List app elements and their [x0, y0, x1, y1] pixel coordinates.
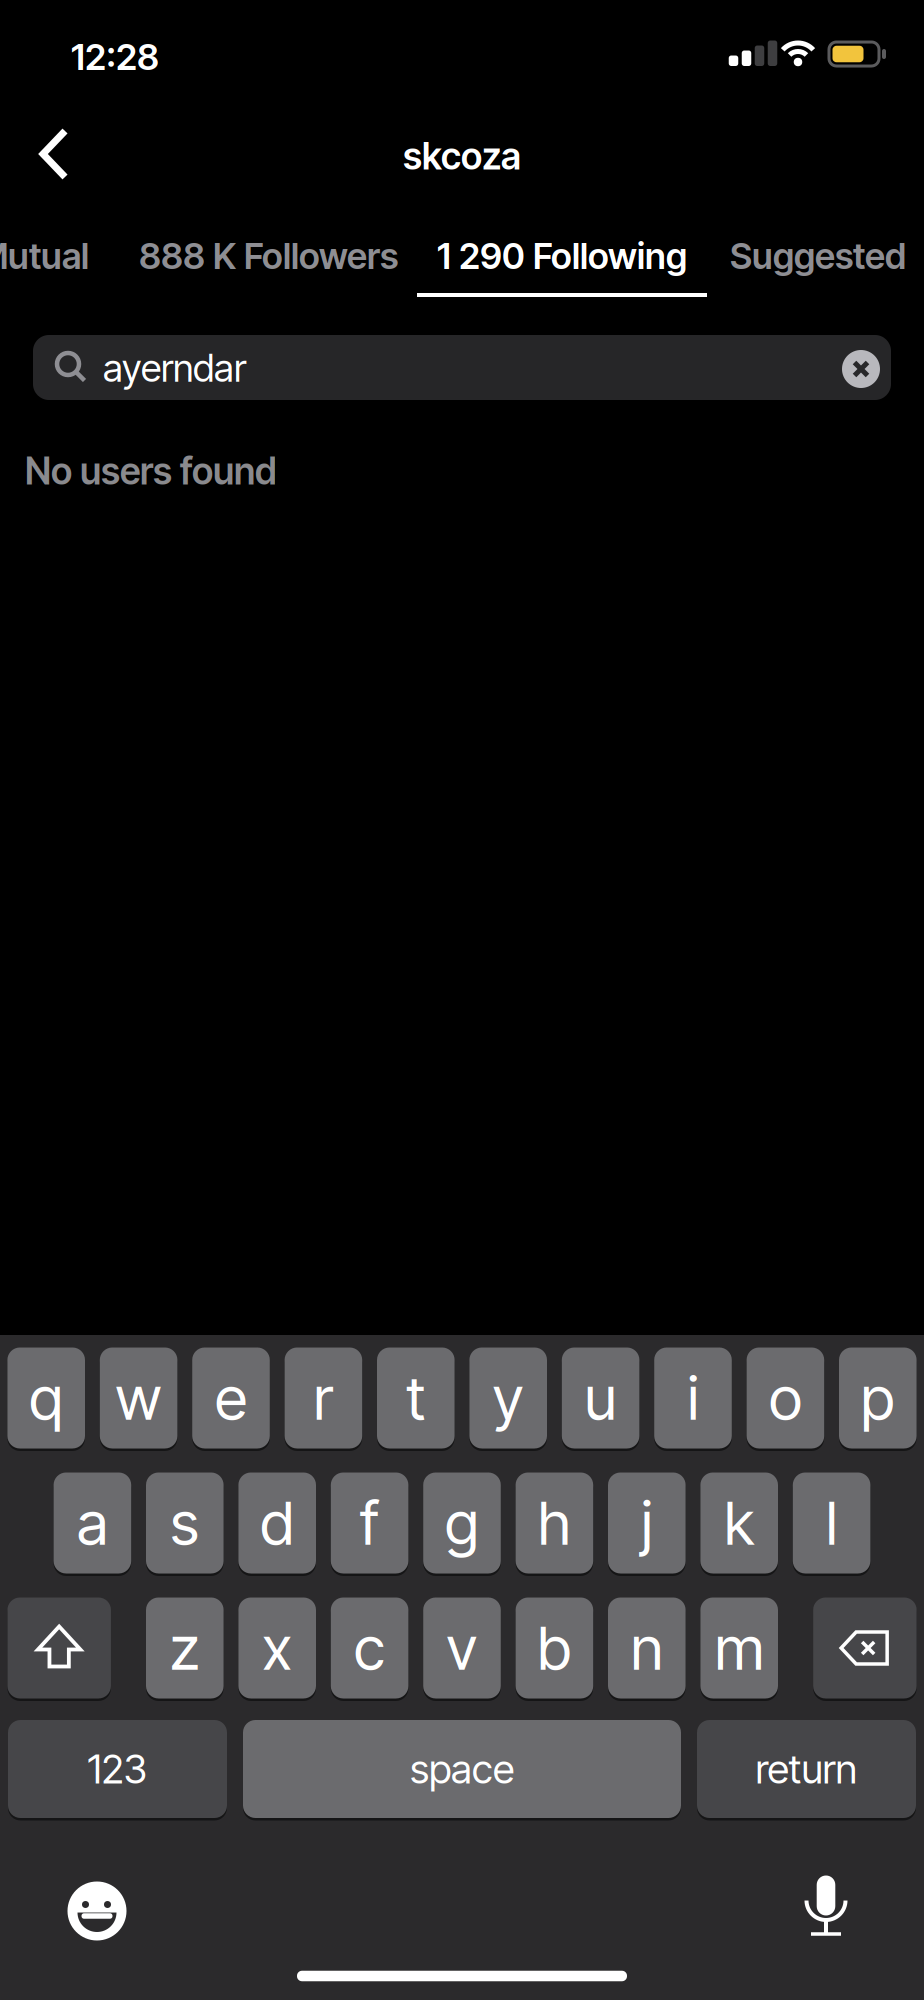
- staticText: c: [354, 1612, 385, 1684]
- staticText: k: [724, 1487, 754, 1559]
- button[interactable]: n: [608, 1597, 686, 1698]
- button[interactable]: Clear search text: [842, 350, 880, 388]
- staticText: z: [170, 1612, 200, 1684]
- staticText: d: [260, 1487, 294, 1559]
- staticText: i: [687, 1362, 698, 1434]
- button[interactable]: 888 K Followers: [119, 219, 418, 297]
- button[interactable]: Shift: [7, 1597, 111, 1698]
- button[interactable]: Back: [0, 121, 88, 187]
- staticText: ayerndar: [103, 345, 246, 391]
- button[interactable]: a: [54, 1472, 131, 1573]
- button[interactable]: h: [516, 1472, 593, 1573]
- button[interactable]: p: [839, 1347, 917, 1448]
- button[interactable]: e: [192, 1347, 270, 1448]
- button[interactable]: Emoji: [66, 1880, 128, 1942]
- button[interactable]: o: [747, 1347, 824, 1448]
- staticText: o: [769, 1362, 802, 1434]
- button[interactable]: q: [7, 1347, 85, 1448]
- button[interactable]: 1 290 Following: [417, 219, 707, 297]
- staticText: l: [826, 1487, 837, 1559]
- staticText: Suggested: [730, 234, 906, 278]
- staticText: 123: [87, 1745, 147, 1793]
- button[interactable]: f: [331, 1472, 408, 1573]
- staticText: s: [170, 1487, 199, 1559]
- staticText: x: [262, 1612, 292, 1684]
- staticText: p: [861, 1362, 895, 1434]
- staticText: j: [641, 1487, 652, 1559]
- button[interactable]: Delete: [813, 1597, 917, 1698]
- staticText: b: [537, 1612, 571, 1684]
- staticText: skcoza: [403, 134, 521, 178]
- staticText: v: [446, 1612, 477, 1684]
- staticText: space: [410, 1745, 514, 1793]
- button[interactable]: d: [238, 1472, 316, 1573]
- staticText: Mutual: [0, 234, 89, 278]
- staticText: w: [116, 1362, 162, 1434]
- button[interactable]: Suggested: [707, 219, 924, 297]
- staticText: r: [313, 1362, 333, 1434]
- button[interactable]: w: [100, 1347, 177, 1448]
- button[interactable]: i: [654, 1347, 732, 1448]
- button[interactable]: v: [423, 1597, 501, 1698]
- button[interactable]: Dictate: [793, 1873, 859, 1939]
- button[interactable]: m: [700, 1597, 778, 1698]
- staticText: t: [406, 1362, 425, 1434]
- staticText: 888 K Followers: [139, 234, 398, 278]
- button[interactable]: k: [700, 1472, 778, 1573]
- button[interactable]: u: [562, 1347, 639, 1448]
- button[interactable]: Search: [33, 335, 891, 400]
- button[interactable]: return: [697, 1720, 916, 1818]
- staticText: f: [360, 1487, 379, 1559]
- staticText: g: [445, 1487, 479, 1559]
- staticText: u: [585, 1362, 617, 1434]
- staticText: n: [631, 1612, 663, 1684]
- button[interactable]: r: [285, 1347, 362, 1448]
- button[interactable]: 123: [8, 1720, 227, 1818]
- staticText: return: [755, 1745, 857, 1793]
- staticText: h: [538, 1487, 571, 1559]
- button[interactable]: l: [793, 1472, 870, 1573]
- button[interactable]: y: [469, 1347, 547, 1448]
- staticText: 1 290 Following: [437, 234, 687, 278]
- button[interactable]: space: [243, 1720, 681, 1818]
- button[interactable]: g: [423, 1472, 501, 1573]
- button[interactable]: t: [377, 1347, 455, 1448]
- button[interactable]: x: [238, 1597, 316, 1698]
- staticText: q: [29, 1362, 63, 1434]
- button[interactable]: z: [146, 1597, 224, 1698]
- staticText: y: [493, 1362, 524, 1434]
- button[interactable]: b: [516, 1597, 593, 1698]
- staticText: m: [715, 1612, 764, 1684]
- staticText: 12:28: [71, 35, 159, 79]
- button[interactable]: Mutual: [0, 219, 126, 297]
- button[interactable]: s: [146, 1472, 224, 1573]
- button[interactable]: j: [608, 1472, 686, 1573]
- staticText: a: [77, 1487, 108, 1559]
- staticText: No users found: [25, 449, 277, 493]
- staticText: e: [215, 1362, 247, 1434]
- button[interactable]: c: [331, 1597, 408, 1698]
